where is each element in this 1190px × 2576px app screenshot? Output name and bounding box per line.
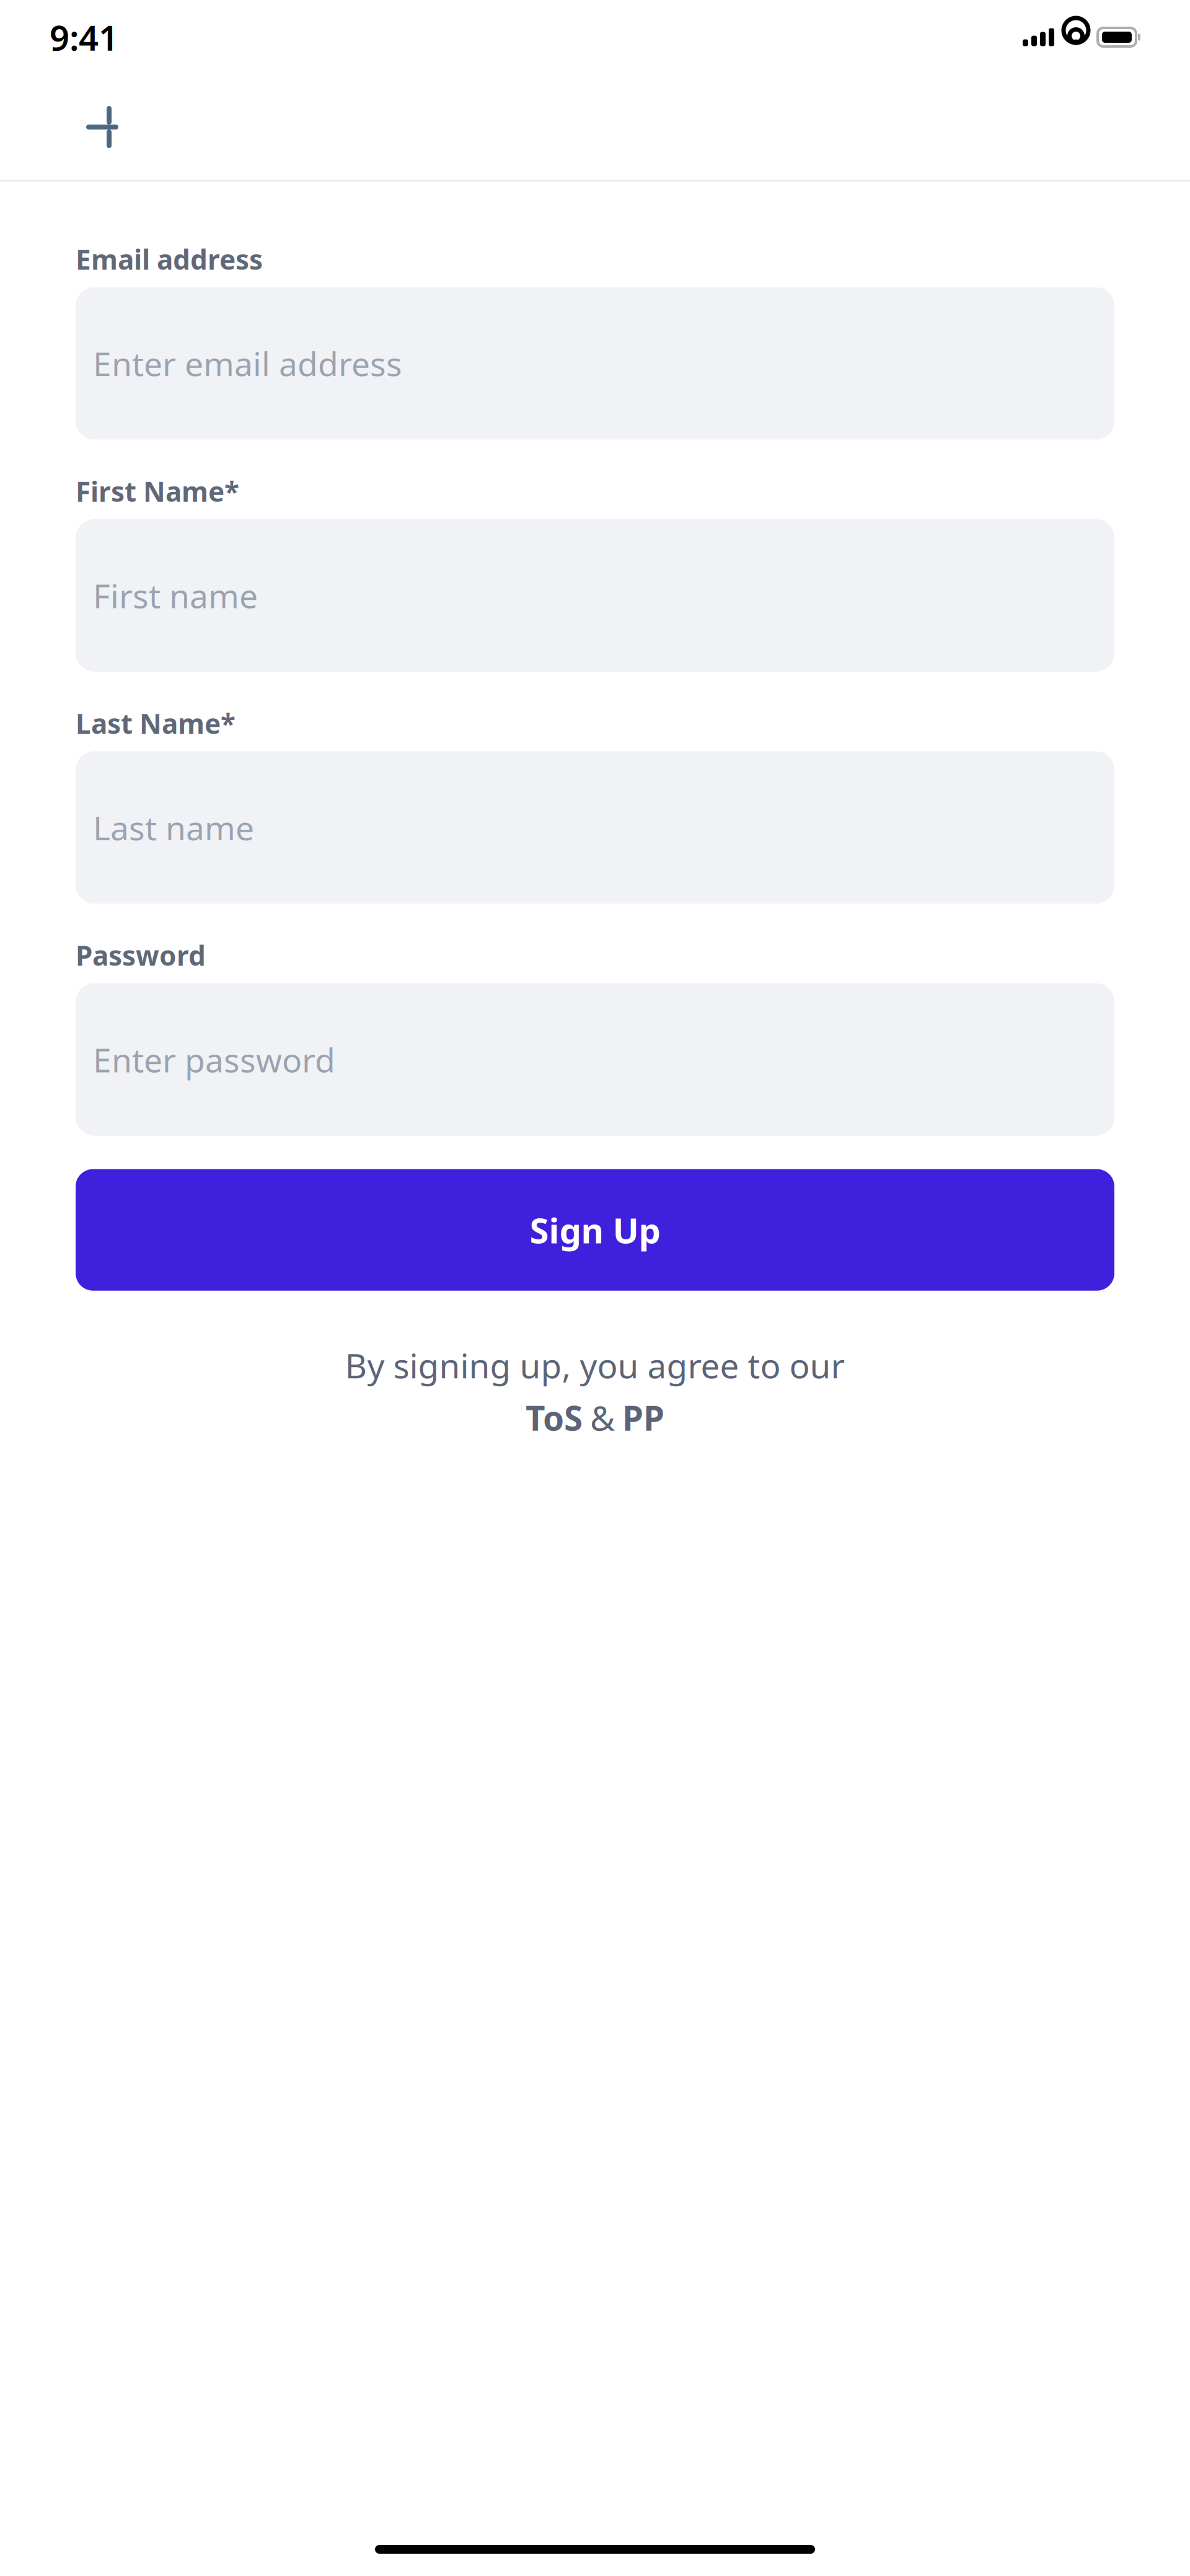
staticText: Sign Up [530,1207,660,1253]
button[interactable]: ToS [526,1395,583,1440]
button[interactable]: Enter password [76,983,1114,1136]
staticText: First name [93,573,258,617]
staticText: Enter password [93,1038,335,1081]
button[interactable]: Enter email address [76,287,1114,440]
button[interactable]: Sign Up [76,1169,1114,1291]
staticText: Email address [76,241,263,277]
button[interactable]: Back [68,93,136,161]
staticText: 9:41 [50,14,118,60]
staticText: PP [622,1395,664,1440]
button[interactable]: PP [622,1395,664,1440]
button[interactable]: First name [76,519,1114,672]
button[interactable]: Last name [76,751,1114,904]
staticText: By signing up, you agree to our [345,1343,845,1388]
staticText: Last Name* [76,705,236,741]
staticText: & [590,1395,615,1440]
staticText: Password [76,937,206,973]
staticText: Enter email address [93,341,402,385]
staticText: First Name* [76,473,239,509]
staticText: Last name [93,806,254,849]
staticText: ToS [526,1395,583,1440]
